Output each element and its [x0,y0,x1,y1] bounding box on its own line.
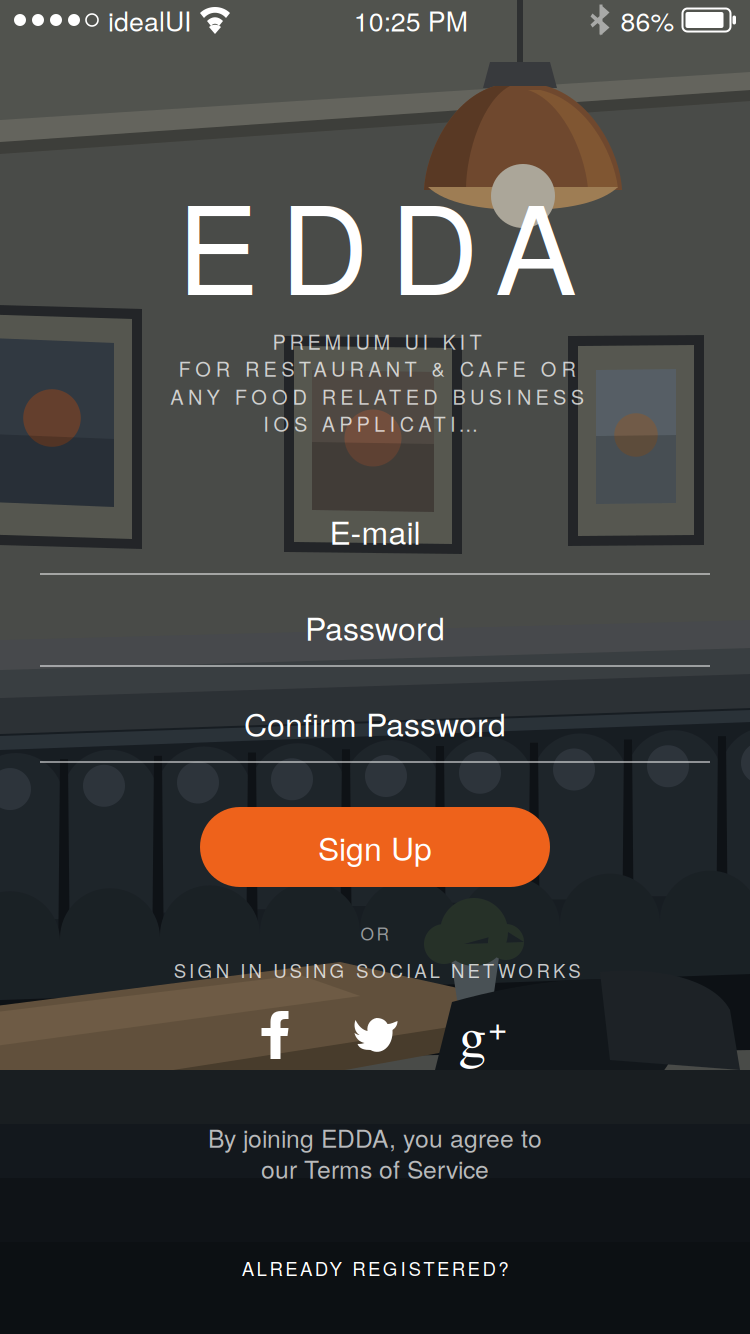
staticText: + [487,1001,507,1050]
staticText: 10:25 PM [354,1,468,39]
staticText: Password [305,604,445,650]
staticText: idealUI [108,1,191,39]
button[interactable]: Sign in with Twitter [340,1005,412,1065]
staticText: OR [360,921,389,945]
staticText: By joining EDDA, you agree to [208,1119,542,1155]
button[interactable]: Sign Up [200,807,550,887]
button[interactable]: ALREADY REGISTERED? [0,1238,750,1298]
staticText: E-mail [329,508,420,554]
staticText: g [458,998,486,1072]
button[interactable]: Sign in with Facebook [239,1005,311,1065]
staticText: IOS APPLICATION [263,409,495,437]
staticText: 86% [620,1,674,39]
staticText: ANY FOOD RELATED BUSINESS [170,382,584,410]
staticText: SIGN IN USING SOCIAL NETWORKS [174,957,580,983]
staticText: PREMIUM UI KIT [272,327,481,355]
staticText: FOR RESTAURANT & CAFE OR [179,354,575,382]
staticText: our Terms of Service [261,1150,489,1186]
staticText: EDDA [177,154,577,330]
staticText: ALREADY REGISTERED? [242,1255,508,1281]
staticText: Confirm Password [244,700,506,746]
button[interactable]: Sign in with Google Plus [447,1005,519,1065]
staticText: Sign Up [318,824,432,870]
